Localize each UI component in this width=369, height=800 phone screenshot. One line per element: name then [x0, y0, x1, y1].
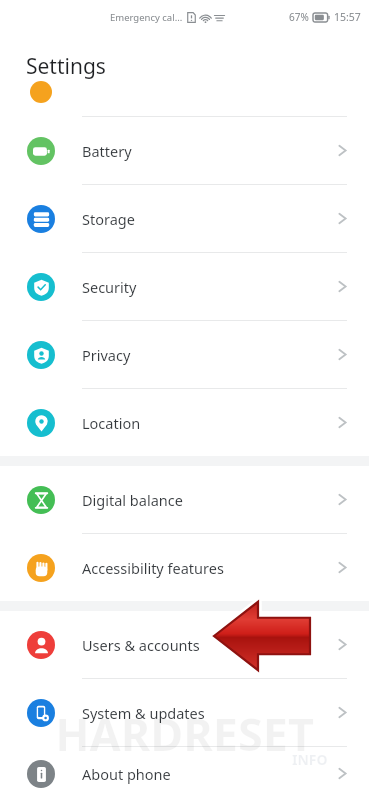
staticText: Digital balance	[82, 490, 183, 510]
button[interactable]: About phone	[0, 747, 369, 800]
button[interactable]: Privacy	[0, 321, 369, 389]
staticText: System & updates	[82, 703, 205, 723]
button[interactable]: Accessibility features	[0, 534, 369, 601]
staticText: Storage	[82, 209, 135, 229]
button[interactable]: System & updates	[0, 679, 369, 747]
staticText: Battery	[82, 141, 132, 161]
staticText: 15:57	[334, 10, 361, 24]
staticText: Location	[82, 413, 141, 433]
button[interactable]: Storage	[0, 185, 369, 253]
staticText: Settings	[26, 52, 106, 81]
button[interactable]: Battery	[0, 117, 369, 185]
button[interactable]: Security	[0, 253, 369, 321]
button[interactable]: Digital balance	[0, 466, 369, 534]
staticText: Privacy	[82, 345, 131, 365]
staticText: Emergency cal...	[110, 11, 183, 24]
staticText: HARDRESET	[0, 703, 369, 764]
button[interactable]: Users & accounts	[0, 611, 369, 679]
button[interactable]: Location	[0, 389, 369, 456]
staticText: Accessibility features	[82, 558, 224, 578]
staticText: About phone	[82, 764, 171, 784]
staticText: INFO	[292, 750, 328, 769]
staticText: Security	[82, 277, 137, 297]
staticText: Users & accounts	[82, 635, 200, 655]
staticText: 67%	[289, 10, 309, 24]
